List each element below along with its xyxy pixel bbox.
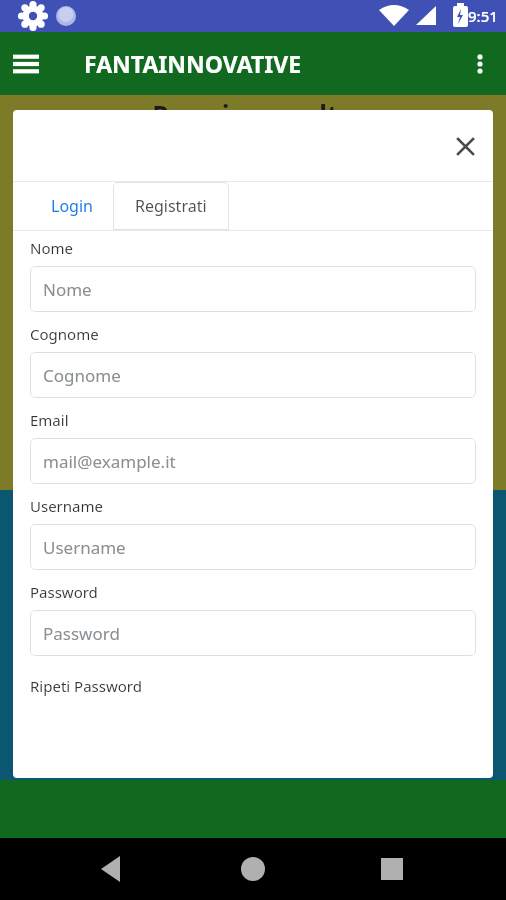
staticText: Username (30, 496, 103, 516)
staticText: Prossime scelte (0, 97, 506, 132)
staticText: Cognome (43, 364, 121, 387)
staticText: Nome (30, 238, 73, 258)
staticText: 9:51 (468, 6, 498, 26)
button[interactable]: Cognome (30, 352, 476, 398)
staticText: Nome (43, 278, 92, 301)
staticText: Password (30, 582, 98, 602)
button[interactable]: Username (30, 524, 476, 570)
button[interactable]: mail@example.it (30, 438, 476, 484)
button[interactable]: Nome (30, 266, 476, 312)
button[interactable]: Recent apps (386, 838, 506, 900)
button[interactable]: Open navigation menu (0, 38, 52, 90)
button[interactable]: Back (0, 838, 120, 900)
staticText: Username (43, 536, 126, 559)
button[interactable]: Home (198, 838, 308, 900)
button[interactable]: Login (31, 182, 113, 230)
staticText: Password (43, 622, 120, 645)
staticText: Login (51, 195, 93, 217)
staticText: mail@example.it (43, 450, 176, 473)
staticText: Ripeti Password (30, 676, 142, 696)
button[interactable]: Password (30, 610, 476, 656)
staticText: FANTAINNOVATIVE (84, 48, 302, 79)
button[interactable]: More options (454, 38, 506, 90)
button[interactable]: Close (443, 124, 487, 168)
staticText: Email (30, 410, 69, 430)
button[interactable]: Registrati (113, 182, 229, 230)
staticText: Registrati (135, 195, 207, 217)
staticText: Cognome (30, 324, 99, 344)
